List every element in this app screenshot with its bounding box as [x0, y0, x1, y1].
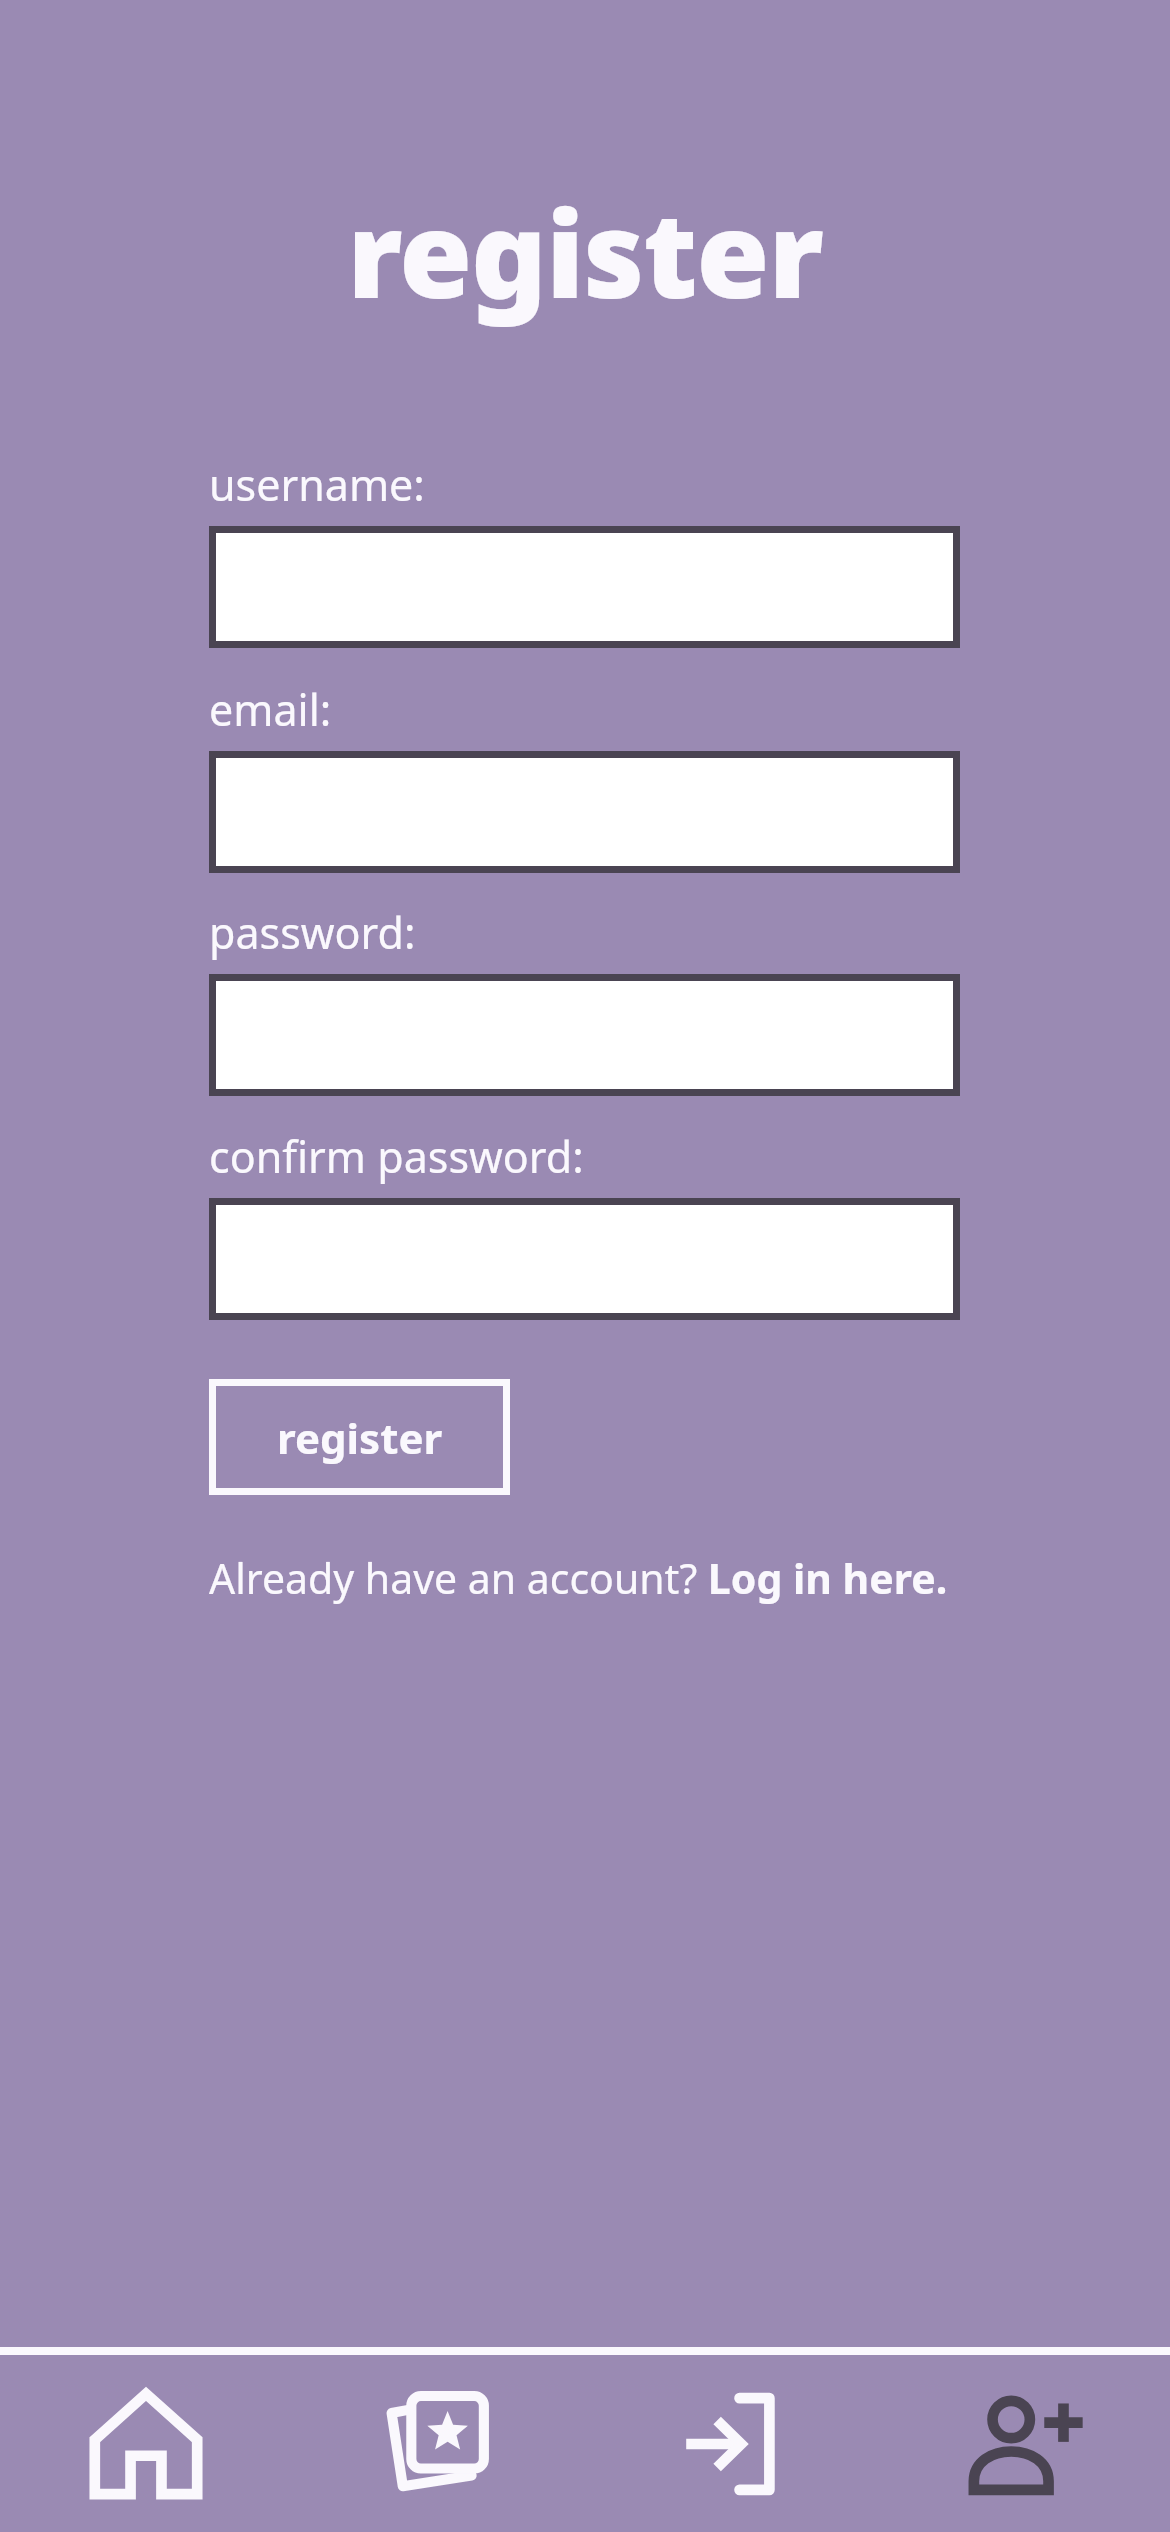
button[interactable]: Register	[877, 2355, 1170, 2532]
button[interactable]: Home	[0, 2355, 292, 2532]
button[interactable]: register	[209, 1379, 510, 1495]
staticText: register	[347, 172, 823, 333]
staticText: confirm password:	[209, 1127, 584, 1186]
button[interactable]: Favorites	[292, 2355, 584, 2532]
staticText: password:	[209, 903, 416, 962]
button[interactable]: Already have an account? Log in here.	[209, 1550, 948, 1606]
staticText: Already have an account? Log in here.	[209, 1550, 948, 1606]
staticText: email:	[209, 680, 332, 739]
staticText: username:	[209, 455, 425, 514]
button[interactable]: Log in	[584, 2355, 877, 2532]
staticText: register	[277, 1409, 443, 1466]
